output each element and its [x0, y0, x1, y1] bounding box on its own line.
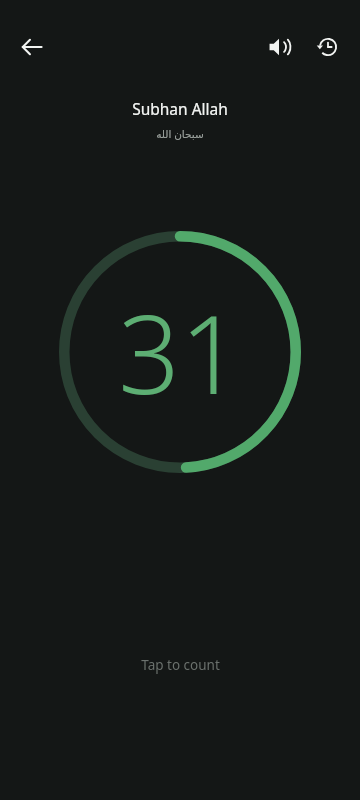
button[interactable]: Sound [255, 23, 303, 71]
staticText: Subhan Allah [132, 98, 228, 119]
staticText: Tap to count [141, 656, 220, 674]
staticText: 31 [118, 279, 242, 426]
button[interactable]: History [304, 23, 352, 71]
button[interactable]: 31 [58, 230, 302, 474]
button[interactable]: Back [8, 23, 56, 71]
staticText: سبحان الله [156, 127, 204, 141]
